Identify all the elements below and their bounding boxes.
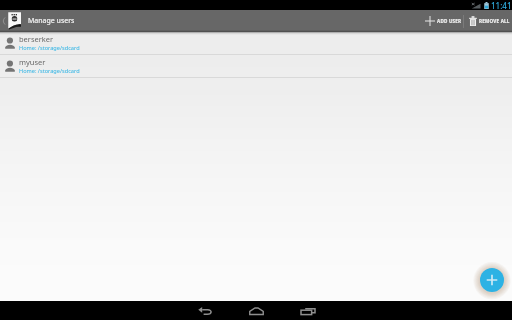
staticText: REMOVE ALL — [479, 18, 510, 24]
button[interactable]: Manage users — [0, 10, 75, 32]
staticText: berserker — [19, 34, 54, 44]
button[interactable]: Recent apps — [282, 301, 334, 320]
button[interactable]: ADD USER — [418, 10, 463, 32]
staticText: Manage users — [28, 16, 75, 26]
button[interactable]: Add user — [480, 268, 504, 292]
staticText: Home: /storage/sdcard — [19, 44, 80, 52]
staticText: 11:41 — [491, 0, 512, 10]
staticText: Home: /storage/sdcard — [19, 67, 80, 75]
button[interactable]: myuser — [0, 55, 512, 78]
button[interactable]: Back — [179, 301, 231, 320]
staticText: myuser — [19, 57, 46, 67]
button[interactable]: berserker — [0, 32, 512, 55]
button[interactable]: Home — [230, 301, 282, 320]
button[interactable]: REMOVE ALL — [464, 10, 512, 32]
staticText: ADD USER — [437, 18, 462, 24]
